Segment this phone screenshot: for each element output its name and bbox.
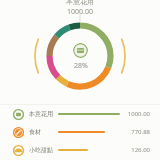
button[interactable]: 本意花用 [0,105,160,123]
staticText: 28% [74,61,88,71]
staticText: 食材 [29,128,56,136]
staticText: 本意花用 [66,0,94,6]
staticText: 小吃甜點 [29,146,56,154]
button[interactable]: Wallet category [73,43,88,58]
staticText: 126.00 [122,146,150,154]
staticText: 1000.00 [122,110,150,118]
staticText: 本意花用 [29,110,56,118]
button[interactable]: 食材 [0,123,160,141]
button[interactable]: 小吃甜點 [0,141,160,159]
staticText: 1000.00 [67,7,93,17]
staticText: 770.88 [122,128,150,136]
